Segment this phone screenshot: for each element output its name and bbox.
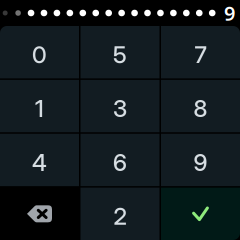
button[interactable]: 6 bbox=[80, 134, 159, 186]
button[interactable]: Confirm bbox=[161, 188, 240, 240]
staticText: 3 bbox=[113, 94, 127, 123]
staticText: 9 bbox=[193, 148, 207, 176]
button[interactable]: 2 bbox=[80, 188, 159, 240]
button[interactable]: 9 bbox=[161, 134, 240, 186]
button[interactable]: 4 bbox=[0, 134, 79, 186]
staticText: 4 bbox=[32, 148, 47, 176]
staticText: 0 bbox=[32, 41, 47, 69]
button[interactable]: 0 bbox=[0, 26, 79, 78]
staticText: 2 bbox=[113, 202, 126, 230]
button[interactable]: 3 bbox=[80, 80, 159, 132]
staticText: 6 bbox=[113, 148, 127, 176]
staticText: 1 bbox=[35, 94, 44, 123]
button[interactable]: 5 bbox=[80, 26, 159, 78]
staticText: 7 bbox=[194, 41, 206, 69]
staticText: 9 bbox=[224, 0, 235, 26]
staticText: 5 bbox=[113, 41, 127, 69]
button[interactable]: 7 bbox=[161, 26, 240, 78]
button[interactable]: 8 bbox=[161, 80, 240, 132]
staticText: 8 bbox=[193, 94, 207, 123]
button[interactable]: 1 bbox=[0, 80, 79, 132]
button[interactable]: Delete bbox=[0, 188, 79, 240]
